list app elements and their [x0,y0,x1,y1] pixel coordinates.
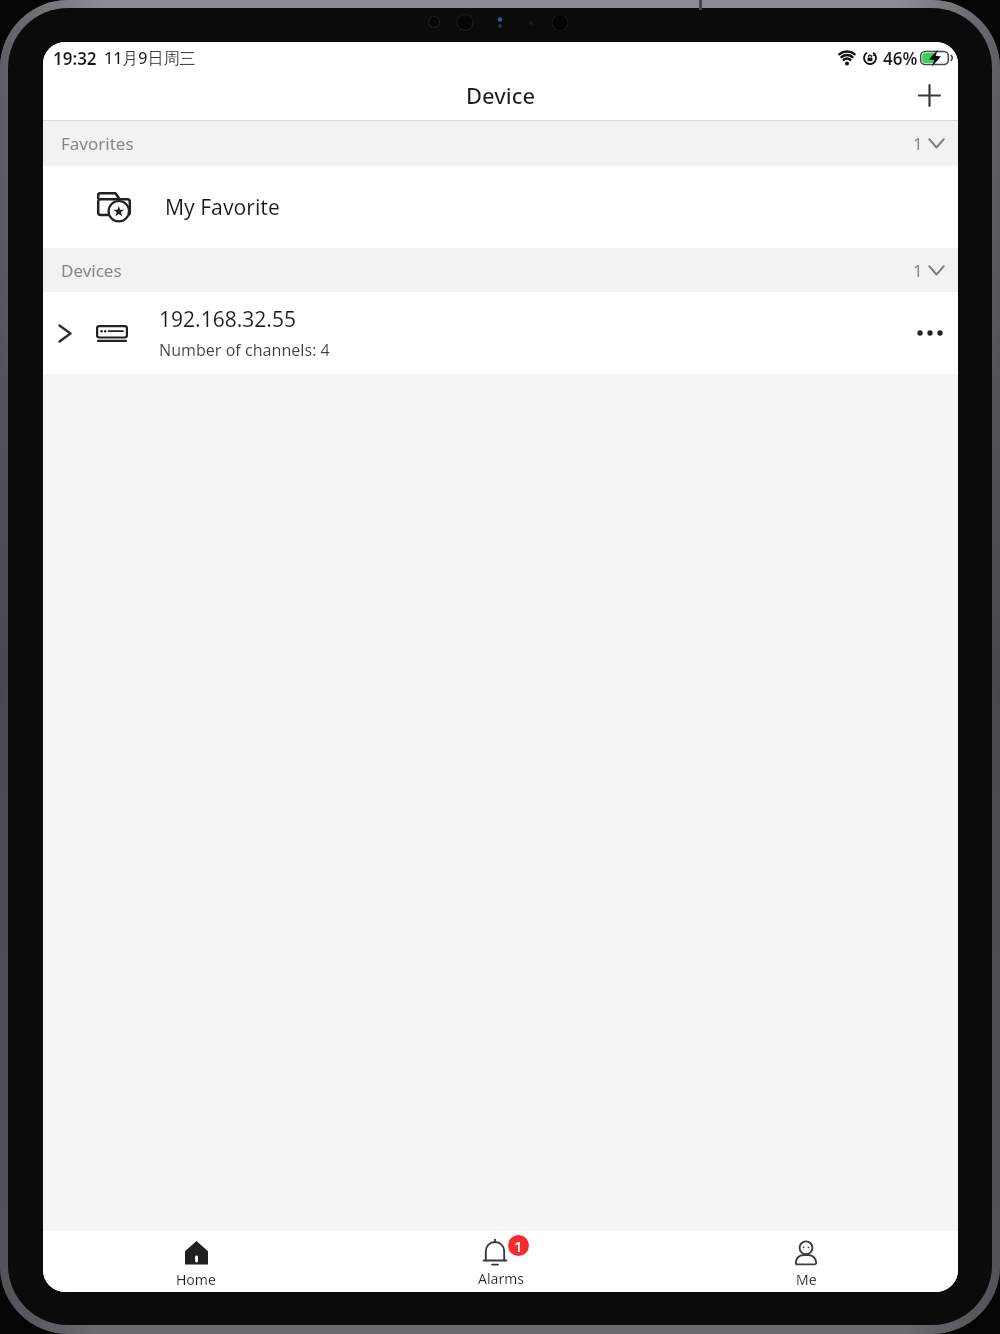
staticText: Number of channels: 4 [159,339,330,361]
button[interactable]: 192.168.32.55 [43,292,958,374]
button[interactable]: My Favorite [43,166,958,248]
staticText: 1 [514,1236,523,1256]
staticText: 19:32 [53,47,97,70]
staticText: Favorites [61,132,134,155]
staticText: 192.168.32.55 [159,305,297,334]
staticText: Me [796,1270,817,1289]
staticText: Alarms [478,1269,524,1288]
staticText: 1 [913,259,923,282]
button[interactable]: Me [653,1231,958,1292]
staticText: Device [466,80,536,110]
staticText: Home [176,1270,216,1289]
staticText: Devices [61,259,122,282]
staticText: My Favorite [165,193,280,222]
button[interactable]: Favorites [43,121,958,166]
button[interactable]: Devices [43,248,958,292]
button[interactable] [910,313,950,353]
staticText: 46% [883,47,918,70]
button[interactable]: Home [43,1231,348,1292]
button[interactable] [913,79,945,111]
staticText: 1 [913,132,923,155]
button[interactable]: 1 [348,1231,653,1292]
staticText: 11月9日周三 [104,47,196,69]
